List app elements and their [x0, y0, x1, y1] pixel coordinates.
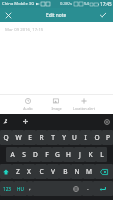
staticText: G — [55, 150, 60, 159]
staticText: Mar 09 2016, 17:15 — [5, 26, 44, 32]
button[interactable]: F — [41, 147, 52, 162]
button[interactable]: D — [30, 147, 41, 162]
staticText: F — [45, 150, 49, 159]
button[interactable]: L — [96, 147, 107, 162]
staticText: T — [51, 133, 55, 142]
button[interactable]: Image — [42, 94, 70, 114]
staticText: HU — [17, 186, 24, 192]
staticText: 54 — [84, 1, 89, 7]
staticText: I — [84, 133, 87, 142]
button[interactable]: , — [27, 181, 33, 196]
staticText: 0.3K/s — [60, 1, 73, 7]
staticText: W — [15, 133, 22, 142]
staticText: China Mobile 3G — [2, 1, 35, 7]
button[interactable]: B — [59, 164, 71, 179]
staticText: . — [87, 185, 89, 192]
button[interactable]: C — [35, 164, 47, 179]
button[interactable]: 123 — [0, 181, 14, 196]
staticText: S — [22, 150, 26, 159]
button[interactable]: Add — [21, 117, 30, 126]
button[interactable]: O — [91, 130, 102, 145]
staticText: E — [28, 133, 32, 142]
button[interactable]: G — [52, 147, 63, 162]
button[interactable]: Audio — [14, 94, 42, 114]
staticText: Q — [3, 133, 9, 142]
button[interactable]: . — [82, 181, 93, 196]
staticText: J — [79, 150, 81, 159]
staticText: Audio — [23, 106, 33, 111]
staticText: N — [74, 167, 80, 176]
button[interactable]: P — [102, 130, 113, 145]
button[interactable]: Close — [0, 8, 16, 22]
staticText: Y — [62, 133, 66, 142]
staticText: U — [72, 133, 77, 142]
staticText: B — [63, 167, 68, 176]
button[interactable]: U — [69, 130, 80, 145]
staticText: R — [39, 133, 44, 142]
button[interactable]: K — [85, 147, 96, 162]
button[interactable]: Enter — [93, 181, 113, 196]
staticText: 17:45 — [100, 1, 112, 7]
staticText: L — [100, 150, 104, 159]
button[interactable]: A — [6, 147, 18, 162]
button[interactable]: X — [23, 164, 35, 179]
staticText: 123 — [3, 186, 11, 192]
staticText: P — [106, 133, 110, 142]
staticText: O — [94, 133, 100, 142]
button[interactable]: Q — [0, 130, 12, 145]
button[interactable]: Location alert — [70, 94, 98, 114]
staticText: D — [33, 150, 38, 159]
button[interactable]: W — [12, 130, 24, 145]
button[interactable]: J — [74, 147, 85, 162]
button[interactable]: R — [36, 130, 47, 145]
button[interactable]: Save — [92, 8, 113, 22]
button[interactable]: Voice input — [1, 117, 10, 126]
button[interactable]: HU — [14, 181, 27, 196]
button[interactable]: Shift — [0, 164, 12, 179]
staticText: K — [88, 150, 93, 159]
staticText: C — [39, 167, 44, 176]
button[interactable]: Space — [33, 181, 82, 196]
button[interactable]: S — [18, 147, 30, 162]
button[interactable]: H — [63, 147, 74, 162]
button[interactable]: I — [80, 130, 91, 145]
button[interactable]: Y — [58, 130, 69, 145]
button[interactable]: M — [83, 164, 95, 179]
staticText: A — [10, 150, 15, 159]
staticText: Image — [51, 106, 62, 111]
staticText: Edit note — [46, 12, 67, 19]
staticText: V — [51, 167, 55, 176]
button[interactable]: Backspace — [95, 164, 113, 179]
button[interactable]: V — [47, 164, 59, 179]
staticText: X — [27, 167, 31, 176]
staticText: Location alert — [73, 106, 95, 111]
button[interactable]: T — [47, 130, 58, 145]
button[interactable]: E — [24, 130, 36, 145]
staticText: Z — [16, 167, 20, 176]
button[interactable]: N — [71, 164, 83, 179]
button[interactable]: Settings — [102, 117, 111, 126]
staticText: M — [86, 167, 92, 176]
button[interactable]: Z — [12, 164, 23, 179]
staticText: , — [29, 185, 31, 192]
staticText: H — [66, 150, 71, 159]
